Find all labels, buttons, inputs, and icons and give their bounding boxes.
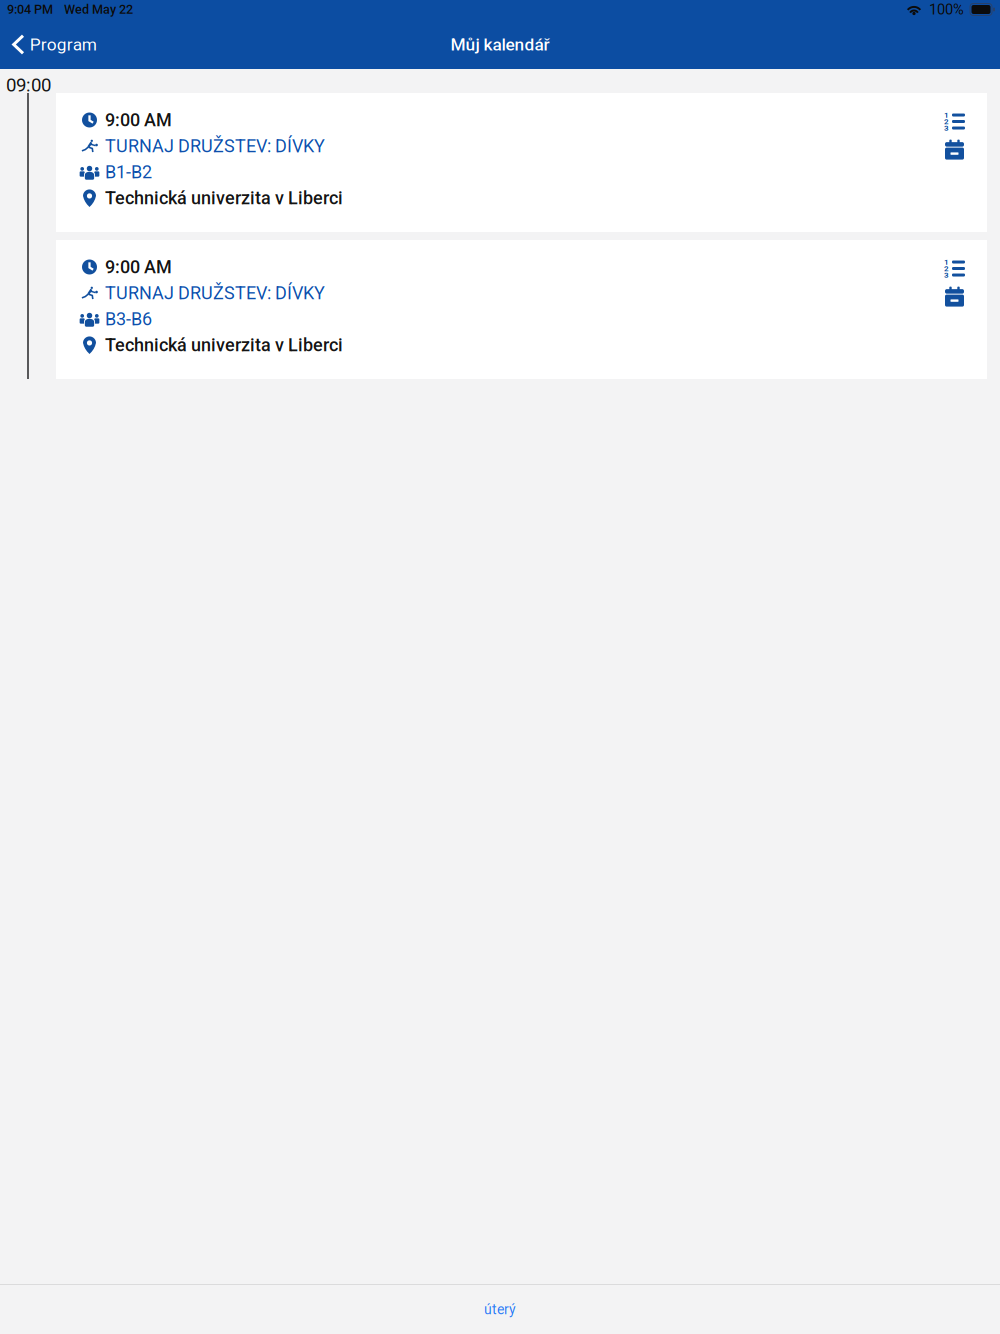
staticText: 9:00 AM xyxy=(105,109,172,131)
staticText: 1 xyxy=(944,110,949,120)
staticText: TURNAJ DRUŽSTEV: DÍVKY xyxy=(105,135,325,157)
staticText: 9:00 AM xyxy=(105,256,172,278)
staticText: B3-B6 xyxy=(105,308,152,330)
button[interactable]: Program xyxy=(0,25,109,69)
staticText: 2 xyxy=(944,117,949,126)
staticText: 100% xyxy=(929,1,964,18)
button[interactable]: 9:00 AM xyxy=(56,93,987,232)
button[interactable]: Seznam účastníků xyxy=(936,108,973,135)
staticText: 1 xyxy=(944,257,949,267)
staticText: Technická univerzita v Liberci xyxy=(105,187,343,209)
staticText: TURNAJ DRUŽSTEV: DÍVKY xyxy=(105,282,325,304)
staticText: Program xyxy=(30,34,97,55)
button[interactable]: Odebrat z kalendáře xyxy=(936,135,973,163)
staticText: 2 xyxy=(944,264,949,273)
button[interactable]: 9:00 AM xyxy=(56,93,901,232)
staticText: 3 xyxy=(944,123,949,133)
staticText: B1-B2 xyxy=(105,161,152,183)
staticText: 09:00 xyxy=(6,74,51,96)
staticText: Můj kalendář xyxy=(450,34,549,55)
button[interactable]: 9:00 AM xyxy=(56,240,901,379)
staticText: 3 xyxy=(944,270,949,280)
button[interactable]: úterý xyxy=(468,1291,532,1328)
staticText: Wed May 22 xyxy=(64,2,133,17)
button[interactable]: 9:00 AM xyxy=(56,240,987,379)
staticText: úterý xyxy=(484,1301,516,1318)
staticText: 9:04 PM xyxy=(7,2,53,17)
button[interactable]: Odebrat z kalendáře xyxy=(936,282,973,310)
button[interactable]: Seznam účastníků xyxy=(936,255,973,282)
staticText: Technická univerzita v Liberci xyxy=(105,334,343,356)
